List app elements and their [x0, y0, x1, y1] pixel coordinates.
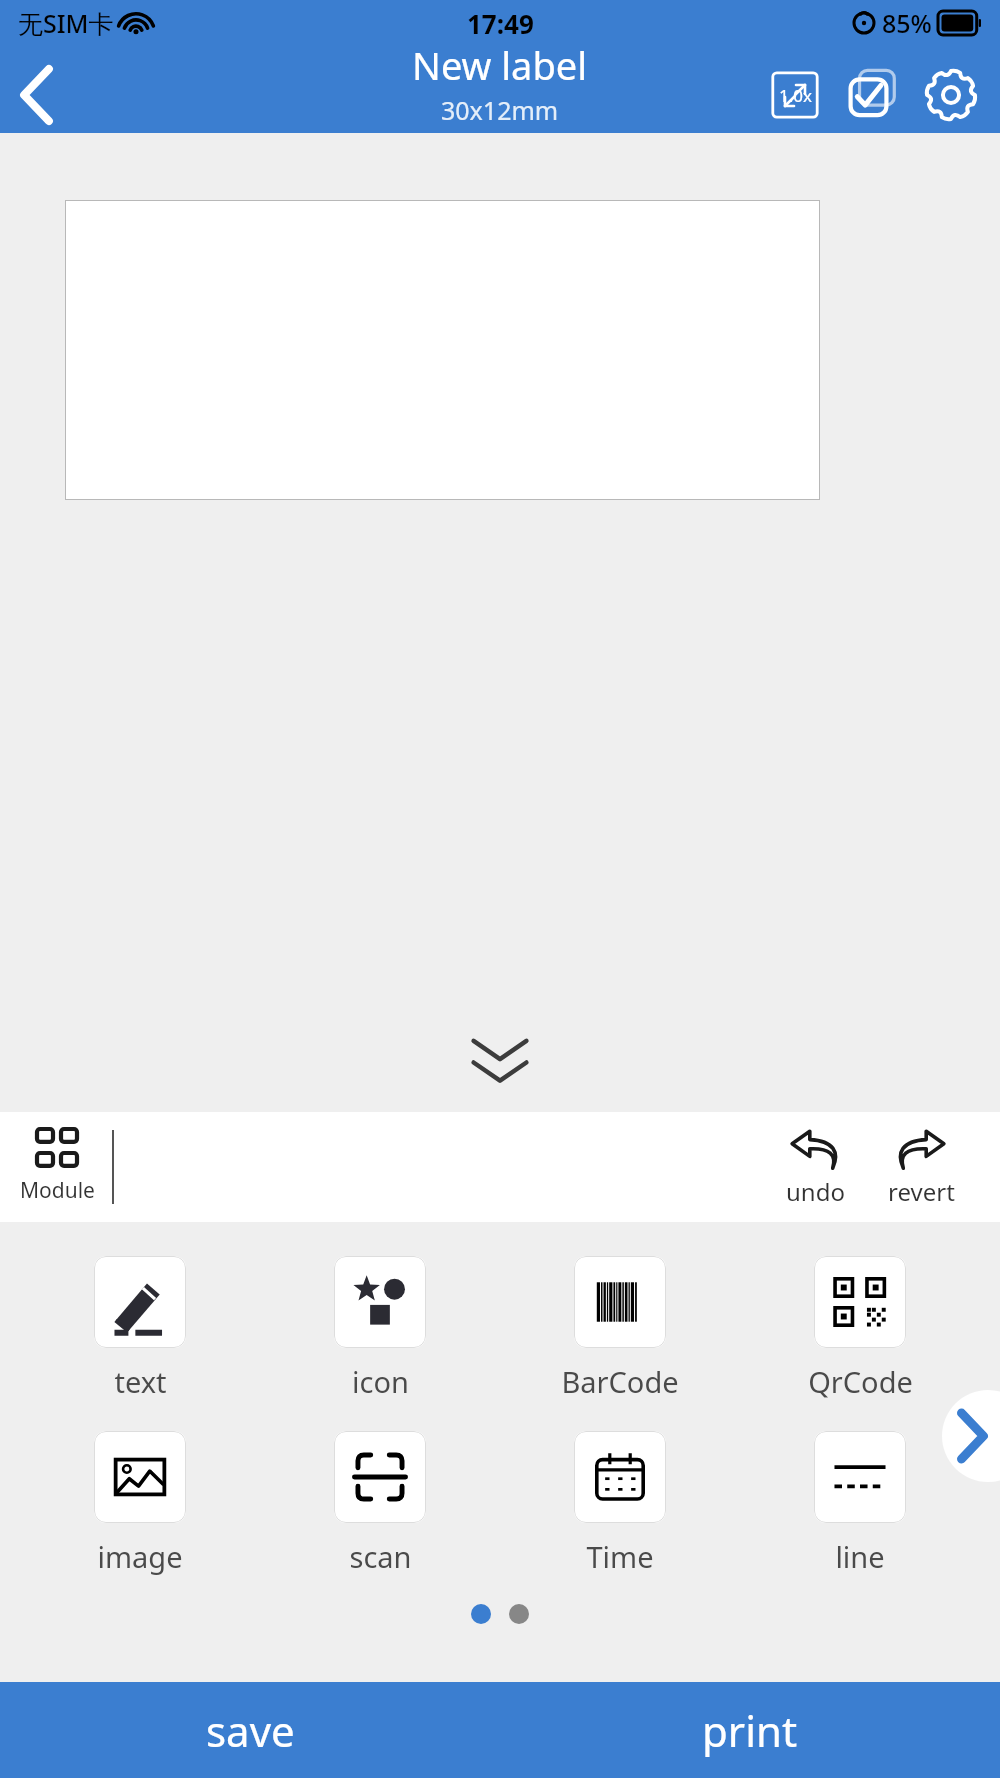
- staticText: revert: [888, 1175, 955, 1208]
- staticText: Module: [20, 1176, 95, 1205]
- staticText: QrCode: [808, 1362, 913, 1401]
- button[interactable]: text: [40, 1256, 240, 1401]
- staticText: line: [835, 1537, 885, 1576]
- staticText: icon: [352, 1362, 409, 1401]
- button[interactable]: Module: [18, 1129, 96, 1205]
- staticText: Time: [586, 1537, 654, 1576]
- button[interactable]: print: [500, 1682, 1000, 1778]
- button[interactable]: QrCode: [760, 1256, 960, 1401]
- button[interactable]: save: [0, 1682, 500, 1778]
- staticText: 无SIM卡: [18, 6, 114, 40]
- staticText: 1.0x: [779, 84, 812, 107]
- staticText: 17:49: [467, 6, 534, 41]
- button[interactable]: icon: [280, 1256, 480, 1401]
- button[interactable]: Next page: [942, 1390, 1000, 1482]
- staticText: scan: [349, 1537, 412, 1576]
- staticText: 30x12mm: [441, 93, 559, 127]
- button[interactable]: scan: [280, 1431, 480, 1576]
- button[interactable]: Collapse: [445, 1020, 555, 1104]
- button[interactable]: undo: [772, 1127, 858, 1208]
- staticText: print: [702, 1702, 798, 1759]
- staticText: text: [114, 1362, 167, 1401]
- staticText: image: [97, 1537, 183, 1576]
- staticText: BarCode: [561, 1362, 679, 1401]
- staticText: New label: [412, 39, 588, 91]
- button[interactable]: Back: [0, 58, 74, 132]
- button[interactable]: BarCode: [520, 1256, 720, 1401]
- button[interactable]: Time: [520, 1431, 720, 1576]
- staticText: undo: [786, 1175, 845, 1208]
- button[interactable]: Select all: [836, 58, 910, 132]
- button[interactable]: line: [760, 1431, 960, 1576]
- button[interactable]: Label canvas: [65, 200, 820, 500]
- button[interactable]: Zoom 1.0x: [758, 58, 832, 132]
- button[interactable]: image: [40, 1431, 240, 1576]
- staticText: save: [206, 1702, 295, 1759]
- button[interactable]: Settings: [914, 58, 988, 132]
- button[interactable]: revert: [878, 1127, 964, 1208]
- staticText: 85%: [882, 6, 932, 40]
